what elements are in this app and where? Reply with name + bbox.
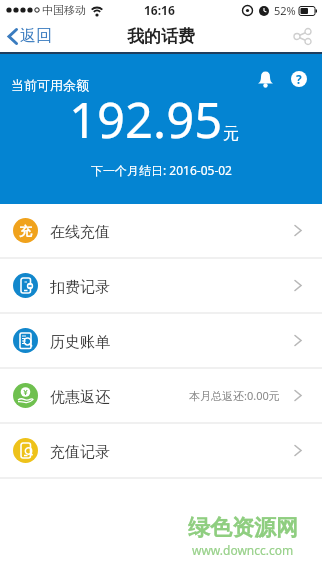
staticText: ? <box>296 71 302 87</box>
staticText: 充 <box>19 223 32 239</box>
staticText: 我的话费 <box>127 26 195 47</box>
button[interactable] <box>294 28 311 45</box>
button[interactable]: 历史账单 <box>0 314 322 369</box>
button[interactable]: 返回 <box>0 24 58 48</box>
staticText: 元 <box>223 124 239 144</box>
button[interactable] <box>257 70 274 89</box>
staticText: 16:16 <box>144 2 175 18</box>
staticText: www.downcc.com <box>192 542 294 558</box>
staticText: 优惠返还 <box>50 388 110 407</box>
staticText: 在线充值 <box>50 223 110 242</box>
button[interactable]: 充值记录 <box>0 424 322 479</box>
staticText: 本月总返还:0.00元 <box>189 388 280 403</box>
staticText: 充值记录 <box>50 443 110 462</box>
button[interactable]: 扣费记录 <box>0 259 322 314</box>
staticText: 中国移动 <box>42 3 86 17</box>
staticText: 当前可用余额 <box>11 77 89 93</box>
staticText: 历史账单 <box>50 333 110 352</box>
button[interactable]: 优惠返还 <box>0 369 322 424</box>
staticText: 返回 <box>20 26 52 46</box>
staticText: 192.95 <box>69 86 223 153</box>
staticText: 绿色资源网 <box>188 514 298 542</box>
button[interactable]: ? <box>291 71 307 87</box>
staticText: 扣费记录 <box>50 278 110 297</box>
staticText: 下一个月结日: 2016-05-02 <box>91 162 232 178</box>
staticText: 52% <box>274 3 296 18</box>
button[interactable]: 充 <box>0 204 322 259</box>
